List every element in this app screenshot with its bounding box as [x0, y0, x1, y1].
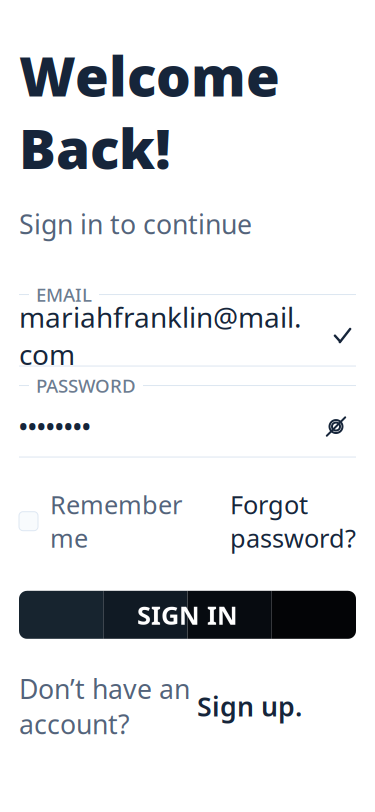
staticText: Sign up.: [197, 688, 302, 724]
staticText: Sign in to continue: [19, 206, 252, 241]
staticText: Forgot password?: [230, 487, 356, 555]
staticText: Don’t have an account?: [19, 671, 190, 742]
button[interactable]: Forgot password?: [230, 481, 356, 561]
staticText: ••••••••: [19, 411, 91, 442]
staticText: mariahfranklin@mail.com: [19, 298, 302, 373]
staticText: PASSWORD: [36, 373, 136, 398]
button[interactable]: Don’t have an account?: [19, 665, 302, 748]
button[interactable]: Show password: [316, 406, 356, 446]
staticText: SIGN IN: [137, 598, 238, 632]
staticText: Welcome Back!: [19, 39, 280, 184]
staticText: Remember me: [50, 487, 182, 555]
button[interactable]: SIGN IN: [19, 591, 356, 639]
staticText: EMAIL: [36, 282, 92, 307]
button[interactable]: Remember me: [19, 481, 182, 561]
